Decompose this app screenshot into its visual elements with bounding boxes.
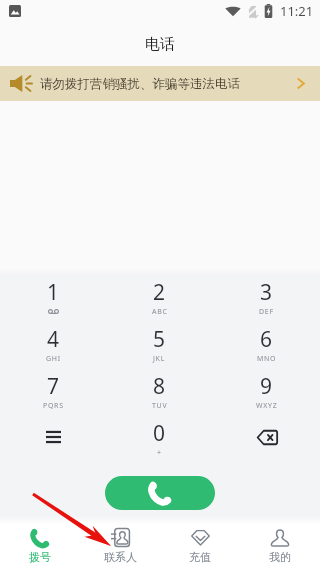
staticText: TUV	[152, 401, 168, 411]
button[interactable]: 9	[213, 369, 320, 416]
button[interactable]: 7	[0, 369, 106, 416]
staticText: 7	[47, 372, 60, 401]
staticText: +	[157, 448, 162, 458]
button[interactable]: 3	[213, 275, 320, 322]
staticText: 充值	[189, 550, 211, 564]
button[interactable]: 8	[106, 369, 213, 416]
staticText: WXYZ	[256, 401, 278, 411]
staticText: 电话	[145, 35, 175, 54]
button[interactable]: 请勿拨打营销骚扰、诈骗等违法电话	[0, 66, 320, 101]
staticText: 0	[153, 419, 166, 448]
staticText: DEF	[259, 307, 274, 317]
button[interactable]: 4	[0, 322, 106, 369]
staticText: 6	[260, 325, 273, 354]
staticText: 联系人	[104, 550, 137, 564]
button[interactable]: Call	[105, 476, 215, 510]
staticText: ABC	[152, 307, 168, 317]
button[interactable]: 充值	[160, 525, 240, 569]
staticText: 8	[153, 372, 166, 401]
staticText: 拨号	[29, 550, 51, 564]
button[interactable]: 2	[106, 275, 213, 322]
button[interactable]: 我的	[240, 525, 320, 569]
staticText: 5	[153, 325, 166, 354]
staticText: 3	[260, 278, 273, 307]
button[interactable]: 拨号	[0, 525, 80, 569]
button[interactable]: 1	[0, 275, 106, 322]
button[interactable]: Keypad options	[0, 416, 106, 463]
staticText: 11:21	[280, 2, 314, 20]
staticText: 1	[47, 278, 60, 307]
staticText: 4	[47, 325, 60, 354]
button[interactable]: 0	[106, 416, 213, 463]
other: Backspace	[250, 420, 284, 454]
staticText: 我的	[269, 550, 291, 564]
button[interactable]: 6	[213, 322, 320, 369]
staticText: 2	[153, 278, 166, 307]
button[interactable]: 5	[106, 322, 213, 369]
button[interactable]: Backspace	[213, 416, 320, 463]
staticText: PQRS	[43, 401, 64, 411]
button[interactable]: 联系人	[80, 525, 160, 569]
staticText: JKL	[153, 354, 166, 364]
other: Keypad options	[36, 420, 70, 454]
staticText: 请勿拨打营销骚扰、诈骗等违法电话	[40, 76, 240, 92]
staticText: 9	[260, 372, 273, 401]
staticText: GHI	[46, 354, 61, 364]
staticText: MNO	[257, 354, 277, 364]
